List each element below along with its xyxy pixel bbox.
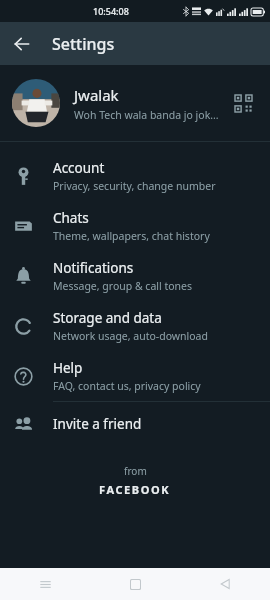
staticText: from xyxy=(124,464,147,478)
staticText: Notifications xyxy=(53,259,134,277)
staticText: Help xyxy=(53,359,83,377)
staticText: Theme, wallpapers, chat history xyxy=(53,229,210,243)
staticText: FACEBOOK xyxy=(99,482,171,497)
button[interactable]: Back xyxy=(6,28,38,60)
button[interactable]: Back xyxy=(180,568,270,600)
button[interactable]: Account xyxy=(0,151,270,201)
button[interactable]: Home xyxy=(90,568,180,600)
staticText: Woh Tech wala banda jo joke… xyxy=(74,108,222,122)
staticText: Network usage, auto-download xyxy=(53,329,208,343)
staticText: 10:54:08 xyxy=(93,5,129,17)
staticText: Invite a friend xyxy=(53,415,142,433)
staticText: Jwalak xyxy=(74,85,119,105)
staticText: Message, group & call tones xyxy=(53,279,193,293)
staticText: Chats xyxy=(53,209,89,227)
button[interactable]: QR code xyxy=(228,88,258,118)
button[interactable]: Invite a friend xyxy=(0,402,270,446)
staticText: Account xyxy=(53,159,105,177)
button[interactable]: Recent apps xyxy=(0,568,90,600)
staticText: FAQ, contact us, privacy policy xyxy=(53,379,201,393)
staticText: Settings xyxy=(52,33,115,55)
button[interactable]: Storage and data xyxy=(0,301,270,351)
staticText: Storage and data xyxy=(53,309,162,327)
button[interactable]: Jwalak xyxy=(0,65,270,141)
staticText: Privacy, security, change number xyxy=(53,179,216,193)
button[interactable]: Chats xyxy=(0,201,270,251)
button[interactable]: Notifications xyxy=(0,251,270,301)
button[interactable]: Help xyxy=(0,351,270,401)
